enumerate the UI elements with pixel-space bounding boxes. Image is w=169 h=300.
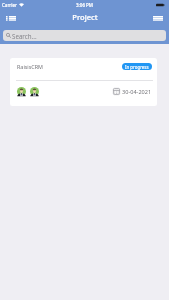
button[interactable]: Search...	[3, 30, 166, 41]
staticText: In progress	[125, 64, 149, 70]
staticText: RaisisCRM	[17, 63, 43, 70]
staticText: Carrier	[2, 2, 17, 8]
staticText: 30-04-2021	[122, 88, 152, 96]
button[interactable]: RaisisCRM	[10, 58, 157, 106]
staticText: Search...	[12, 32, 37, 40]
staticText: Project	[72, 12, 98, 22]
button[interactable]: Options menu	[150, 10, 166, 26]
button[interactable]: Open list menu	[3, 10, 19, 26]
staticText: 3:06 PM	[76, 2, 93, 8]
